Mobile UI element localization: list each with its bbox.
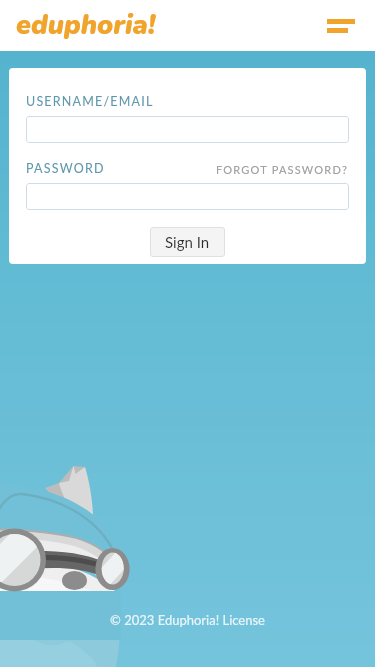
staticText: © 2023 Eduphoria! License: [110, 612, 265, 628]
button[interactable]: Sign In: [150, 227, 225, 257]
staticText: Sign In: [165, 233, 210, 251]
button[interactable]: [26, 116, 349, 143]
button[interactable]: Menu: [321, 6, 361, 46]
staticText: eduphoria!: [16, 7, 156, 44]
button[interactable]: [26, 183, 349, 210]
button[interactable]: FORGOT PASSWORD?: [216, 163, 349, 176]
staticText: PASSWORD: [26, 161, 105, 176]
staticText: USERNAME/EMAIL: [26, 94, 154, 109]
